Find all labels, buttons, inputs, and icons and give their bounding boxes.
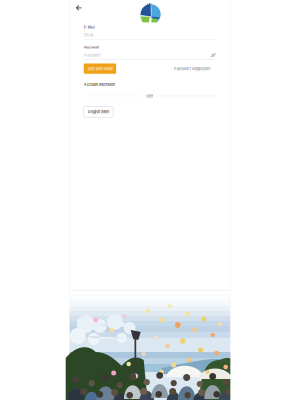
staticText: Email: [84, 33, 94, 37]
staticText: Passwort: [84, 53, 101, 58]
staticText: oder: [146, 93, 154, 98]
staticText: E-Mail: [84, 25, 95, 29]
button[interactable]: Jetzt anmelden: [84, 63, 116, 74]
staticText: Jetzt anmelden: [87, 66, 113, 71]
staticText: Registrieren: [88, 109, 109, 114]
button[interactable]: Passwort vergessen?: [174, 64, 216, 73]
button[interactable]: Back: [70, 0, 86, 15]
button[interactable]: Account wechseln: [84, 81, 115, 88]
staticText: Passwort vergessen?: [174, 66, 211, 71]
staticText: Account wechseln: [84, 82, 115, 87]
staticText: Passwort: [84, 45, 99, 49]
button[interactable]: Registrieren: [84, 106, 113, 117]
